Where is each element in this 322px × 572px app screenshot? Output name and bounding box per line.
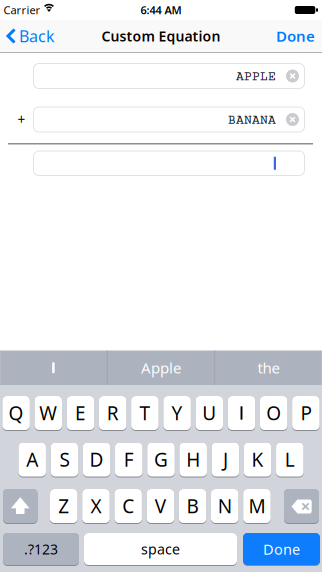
- button[interactable]: space: [84, 533, 237, 566]
- staticText: BANANA: [228, 114, 276, 128]
- button[interactable]: Z: [50, 489, 77, 524]
- button[interactable]: C: [114, 489, 142, 524]
- button[interactable]: Done: [243, 533, 320, 566]
- button[interactable]: Shift: [3, 489, 37, 524]
- staticText: J: [223, 447, 228, 472]
- staticText: Q: [9, 400, 24, 426]
- button[interactable]: Back: [0, 25, 55, 47]
- button[interactable]: N: [211, 489, 238, 524]
- staticText: B: [187, 493, 199, 519]
- staticText: H: [186, 447, 200, 472]
- staticText: T: [139, 400, 150, 426]
- staticText: F: [124, 447, 134, 472]
- staticText: space: [141, 539, 180, 559]
- staticText: G: [154, 447, 168, 472]
- staticText: +: [17, 110, 25, 129]
- button[interactable]: I: [0, 350, 107, 385]
- button[interactable]: A: [18, 442, 46, 477]
- staticText: M: [248, 493, 265, 519]
- button[interactable]: L: [276, 442, 303, 477]
- staticText: Done: [276, 26, 315, 46]
- staticText: Apple: [141, 357, 181, 378]
- staticText: S: [59, 447, 69, 472]
- staticText: Custom Equation: [101, 26, 220, 46]
- staticText: Back: [19, 25, 55, 47]
- button[interactable]: K: [244, 442, 271, 477]
- button[interactable]: E: [67, 396, 94, 431]
- button[interactable]: V: [147, 489, 174, 524]
- button[interactable]: I: [228, 396, 255, 431]
- staticText: Done: [263, 539, 300, 559]
- button[interactable]: M: [243, 489, 271, 524]
- button[interactable]: G: [147, 442, 175, 477]
- staticText: O: [266, 400, 281, 426]
- button[interactable]: W: [34, 396, 62, 431]
- button[interactable]: X: [82, 489, 110, 524]
- staticText: A: [26, 447, 38, 472]
- staticText: APPLE: [236, 70, 276, 85]
- button[interactable]: the: [215, 350, 322, 385]
- staticText: Carrier: [3, 2, 40, 17]
- button[interactable]: F: [115, 442, 142, 477]
- staticText: K: [252, 447, 264, 472]
- staticText: R: [107, 400, 119, 426]
- button[interactable]: Y: [163, 396, 191, 431]
- button[interactable]: .?123: [3, 533, 79, 566]
- staticText: V: [155, 493, 166, 519]
- button[interactable]: U: [195, 396, 223, 431]
- staticText: Z: [58, 493, 69, 519]
- button[interactable]: D: [83, 442, 110, 477]
- button[interactable]: Q: [2, 396, 30, 431]
- button[interactable]: Clear text: [286, 113, 299, 126]
- staticText: E: [75, 400, 86, 426]
- button[interactable]: O: [260, 396, 287, 431]
- button[interactable]: S: [51, 442, 78, 477]
- button[interactable]: Done: [276, 26, 322, 46]
- staticText: N: [218, 493, 232, 519]
- button[interactable]: Delete: [284, 489, 319, 524]
- staticText: X: [90, 493, 101, 519]
- staticText: U: [202, 400, 216, 426]
- button[interactable]: B: [179, 489, 206, 524]
- staticText: Y: [172, 400, 183, 426]
- staticText: 6:44 AM: [140, 2, 181, 17]
- button[interactable]: T: [131, 396, 159, 431]
- staticText: .?123: [24, 539, 58, 559]
- staticText: D: [90, 447, 104, 472]
- button[interactable]: Apple: [108, 350, 214, 385]
- button[interactable]: P: [292, 396, 320, 431]
- staticText: L: [285, 447, 295, 472]
- staticText: W: [39, 400, 57, 426]
- staticText: the: [258, 357, 280, 378]
- button[interactable]: J: [212, 442, 239, 477]
- button[interactable]: H: [179, 442, 207, 477]
- staticText: P: [300, 400, 311, 426]
- button[interactable]: R: [99, 396, 126, 431]
- staticText: C: [122, 493, 134, 519]
- button[interactable]: Clear text: [286, 69, 299, 82]
